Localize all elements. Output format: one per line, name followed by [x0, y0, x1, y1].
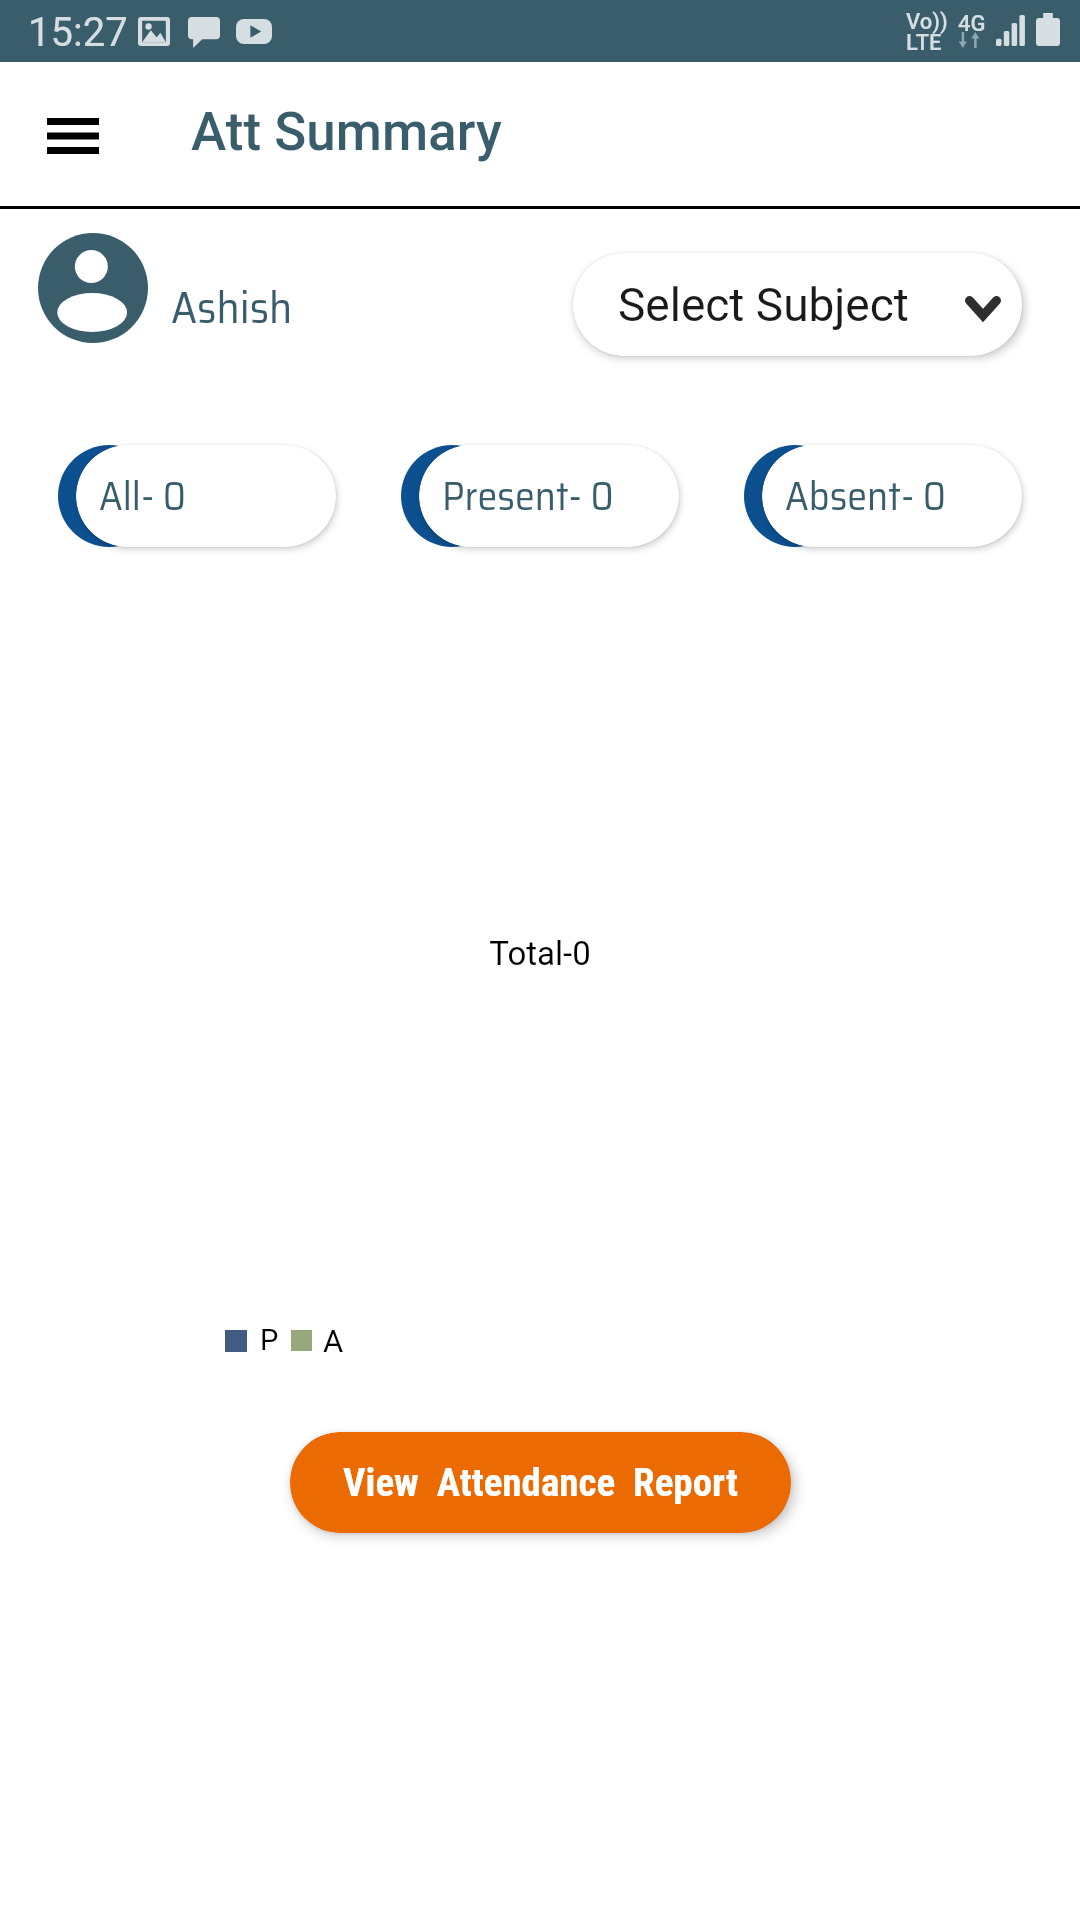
button[interactable]: Select Subject: [573, 253, 1022, 356]
staticText: A: [323, 1323, 344, 1359]
button[interactable]: View Attendance Report: [290, 1432, 791, 1533]
button[interactable]: All- 0: [58, 445, 336, 547]
staticText: All- 0: [99, 465, 186, 528]
button[interactable]: Absent- 0: [744, 445, 1022, 547]
staticText: Vo)): [906, 9, 948, 35]
button[interactable]: Open navigation menu: [24, 100, 122, 172]
staticText: Ashish: [171, 273, 293, 342]
staticText: P: [260, 1323, 279, 1357]
staticText: Present- 0: [442, 465, 614, 528]
staticText: 4G: [958, 11, 986, 37]
staticText: LTE: [906, 30, 942, 56]
staticText: 15:27: [28, 9, 128, 56]
staticText: Absent- 0: [785, 465, 946, 528]
staticText: View Attendance Report: [343, 1460, 738, 1506]
staticText: Select Subject: [618, 278, 909, 332]
staticText: Att Summary: [191, 101, 502, 163]
staticText: Total-0: [0, 934, 1080, 973]
button[interactable]: Present- 0: [401, 445, 679, 547]
